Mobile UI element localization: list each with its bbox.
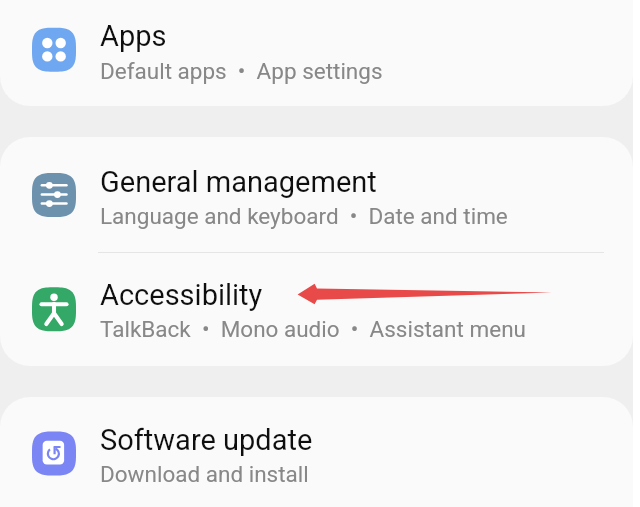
staticText: Default apps • App settings <box>100 58 383 84</box>
button[interactable]: Software update <box>0 397 633 507</box>
button[interactable]: Apps <box>0 0 633 106</box>
staticText: Download and install <box>100 461 309 487</box>
staticText: Apps <box>100 19 167 53</box>
staticText: Accessibility <box>100 278 263 312</box>
staticText: Language and keyboard • Date and time <box>100 203 508 229</box>
staticText: Software update <box>100 423 313 457</box>
staticText: General management <box>100 165 377 199</box>
button[interactable]: Accessibility <box>0 252 633 366</box>
button[interactable]: General management <box>0 137 633 252</box>
staticText: TalkBack • Mono audio • Assistant menu <box>100 316 526 342</box>
